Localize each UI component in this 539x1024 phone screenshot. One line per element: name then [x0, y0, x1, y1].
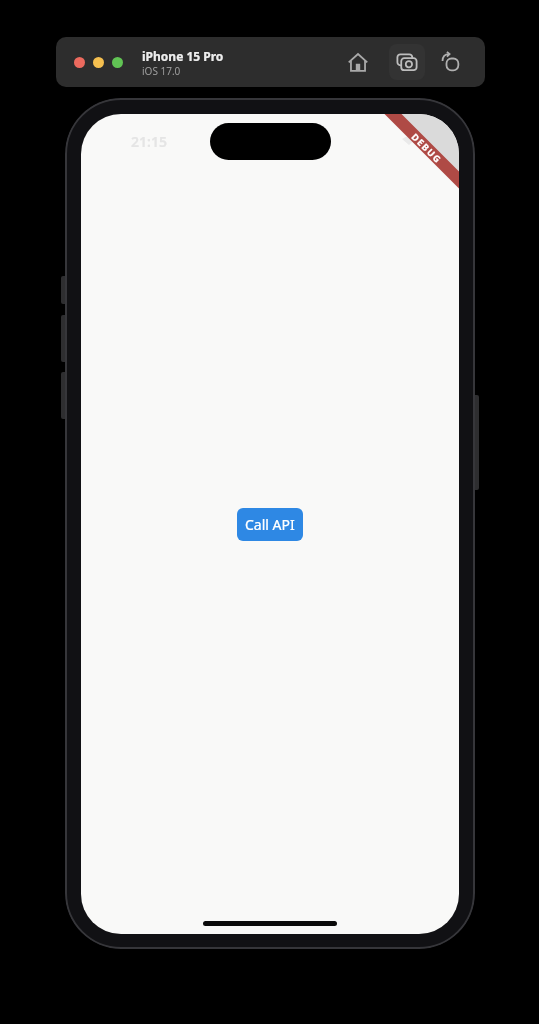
- button[interactable]: [74, 57, 85, 68]
- staticText: iOS 17.0: [142, 64, 181, 78]
- staticText: DEBUG: [409, 130, 445, 166]
- button[interactable]: [432, 44, 468, 80]
- button[interactable]: [112, 57, 123, 68]
- staticText: iPhone 15 Pro: [142, 48, 224, 64]
- button[interactable]: [389, 44, 425, 80]
- button[interactable]: [340, 44, 376, 80]
- staticText: Call API: [245, 515, 295, 534]
- button[interactable]: [93, 57, 104, 68]
- button[interactable]: Call API: [237, 508, 303, 541]
- staticText: 21:15: [131, 132, 167, 150]
